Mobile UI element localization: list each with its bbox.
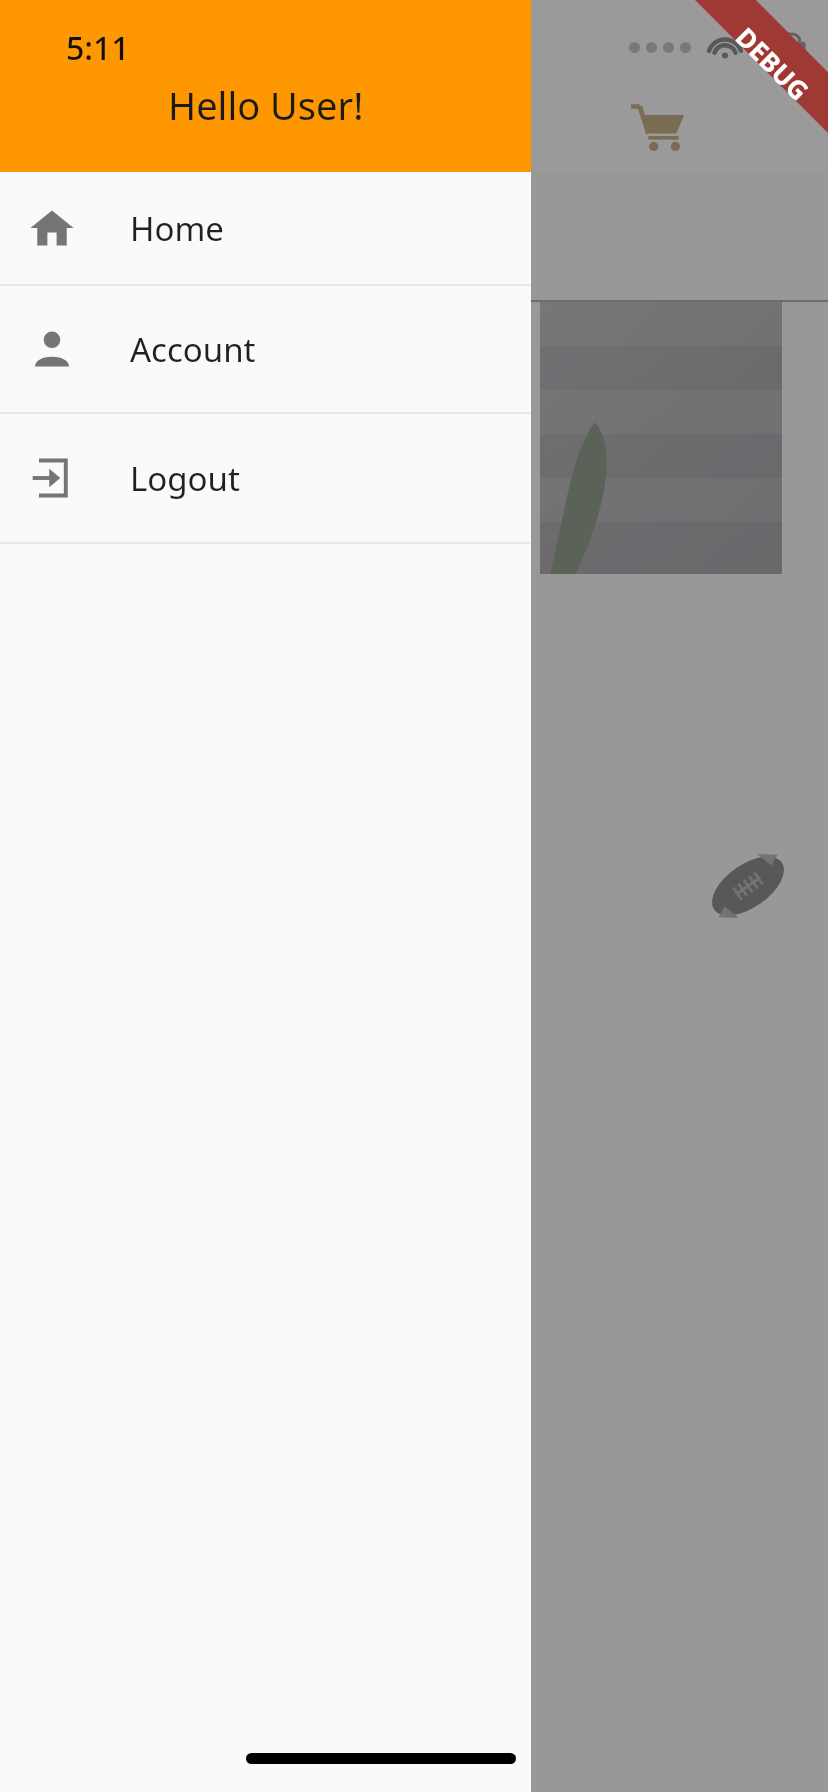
staticText: 5:11 [66,26,130,70]
staticText: Account [130,327,256,372]
button[interactable]: Cart [626,96,688,158]
staticText: DEBUG [729,19,817,108]
staticText: Logout [130,456,240,501]
button[interactable]: Account [0,286,531,412]
button[interactable]: Logout [0,414,531,542]
button[interactable]: Home [0,172,531,284]
button[interactable]: Sports [700,838,796,934]
staticText: Home [130,206,224,251]
staticText: Hello User! [168,79,364,131]
